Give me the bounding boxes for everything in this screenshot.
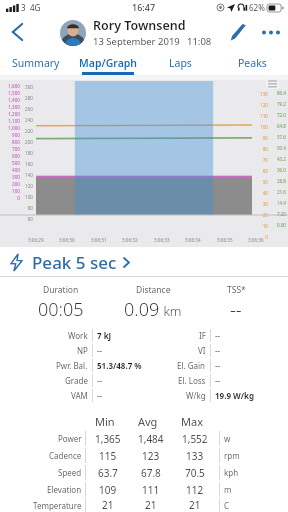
- staticText: 90: [256, 135, 268, 141]
- staticText: 13 September 2019: [93, 35, 180, 48]
- staticText: 123: [142, 449, 160, 463]
- staticText: 1,000: [1, 125, 20, 131]
- staticText: 72.0: [270, 112, 286, 118]
- staticText: 140: [21, 172, 33, 178]
- staticText: 7.20: [270, 211, 286, 217]
- staticText: 21.6: [270, 189, 286, 195]
- staticText: 120: [256, 102, 268, 108]
- staticText: 30: [256, 201, 268, 207]
- staticText: 3:06:36: [248, 237, 264, 243]
- staticText: w: [224, 433, 231, 444]
- staticText: 3:06:30: [59, 237, 75, 243]
- staticText: 100: [1, 188, 20, 194]
- button[interactable]: Chart legend: [266, 78, 279, 89]
- staticText: 1,552: [182, 432, 208, 446]
- staticText: 0.00: [270, 222, 286, 228]
- button[interactable]: Laps: [144, 50, 216, 75]
- staticText: 800: [1, 139, 20, 145]
- staticText: 700: [1, 146, 20, 152]
- staticText: 57.6: [270, 134, 286, 140]
- staticText: VI: [198, 345, 206, 356]
- staticText: 300: [1, 174, 20, 180]
- staticText: Pwr. Bal.: [56, 360, 88, 371]
- staticText: Map/Graph: [79, 56, 138, 70]
- button[interactable]: Back: [0, 15, 34, 49]
- staticText: 0: [256, 234, 268, 240]
- staticText: 400: [1, 167, 20, 173]
- staticText: 3:06:31: [91, 237, 107, 243]
- staticText: 0: [1, 195, 20, 201]
- staticText: 3:06:35: [217, 237, 233, 243]
- staticText: Temperature: [33, 500, 82, 511]
- staticText: 500: [1, 160, 20, 166]
- staticText: 21: [102, 498, 114, 512]
- staticText: C: [224, 500, 230, 511]
- staticText: Distance: [136, 284, 171, 296]
- staticText: 36.0: [270, 167, 286, 173]
- staticText: Rory Townsend: [93, 17, 186, 34]
- button[interactable]: More options: [254, 15, 288, 49]
- staticText: --: [97, 375, 103, 386]
- button[interactable]: Summary: [0, 50, 72, 75]
- staticText: 1,200: [1, 111, 20, 117]
- staticText: 160: [21, 161, 33, 167]
- staticText: 110: [256, 113, 268, 119]
- staticText: 120: [21, 183, 33, 189]
- staticText: --: [230, 297, 242, 322]
- staticText: 60: [256, 168, 268, 174]
- staticText: Peak 5 sec: [32, 251, 117, 274]
- staticText: --: [97, 390, 103, 401]
- staticText: 3:06:34: [185, 237, 201, 243]
- staticText: 3:06:32: [122, 237, 138, 243]
- staticText: 1,400: [1, 97, 20, 103]
- staticText: 109: [99, 483, 117, 497]
- staticText: Cadence: [49, 450, 82, 461]
- staticText: 111: [142, 483, 160, 497]
- staticText: IF: [199, 330, 206, 341]
- staticText: 600: [1, 153, 20, 159]
- staticText: 50.4: [270, 145, 286, 151]
- staticText: 19.9 W/kg: [215, 390, 255, 401]
- staticText: Laps: [169, 56, 192, 70]
- staticText: --: [97, 345, 103, 356]
- staticText: 900: [1, 132, 20, 138]
- staticText: 1,365: [95, 432, 121, 446]
- staticText: 14.4: [270, 200, 286, 206]
- staticText: 1,600: [1, 83, 20, 89]
- staticText: 86.4: [270, 90, 286, 96]
- button[interactable]: Map/Graph: [72, 50, 144, 75]
- staticText: 7 kJ: [97, 330, 112, 341]
- staticText: 79.2: [270, 101, 286, 107]
- staticText: km: [160, 302, 182, 320]
- staticText: 3:06:33: [154, 237, 170, 243]
- staticText: 63.7: [98, 466, 118, 480]
- staticText: 1,484: [138, 432, 164, 446]
- staticText: 100: [21, 194, 33, 200]
- staticText: 200: [1, 181, 20, 187]
- staticText: 21: [145, 498, 157, 512]
- button[interactable]: Edit: [222, 16, 254, 48]
- staticText: 70.5: [185, 466, 205, 480]
- staticText: 180: [21, 150, 33, 156]
- staticText: 28.8: [270, 178, 286, 184]
- staticText: Summary: [12, 56, 60, 70]
- staticText: TSS*: [227, 284, 246, 296]
- staticText: 67.8: [141, 466, 161, 480]
- staticText: --: [215, 330, 221, 341]
- staticText: 3:06:29: [28, 237, 44, 243]
- staticText: 3: [21, 2, 26, 13]
- staticText: 50: [256, 179, 268, 185]
- staticText: 16:47: [132, 1, 156, 13]
- staticText: 43.2: [270, 156, 286, 162]
- button[interactable]: Peak 5 sec: [0, 247, 288, 277]
- staticText: Grade: [65, 375, 88, 386]
- staticText: VAM: [71, 390, 88, 401]
- staticText: 240: [21, 117, 33, 123]
- staticText: 1,300: [1, 104, 20, 110]
- staticText: 20: [256, 212, 268, 218]
- staticText: Speed: [58, 467, 82, 478]
- staticText: 133: [186, 449, 204, 463]
- staticText: 60: [21, 216, 33, 222]
- staticText: 130: [256, 91, 268, 97]
- button[interactable]: Peaks: [216, 50, 288, 75]
